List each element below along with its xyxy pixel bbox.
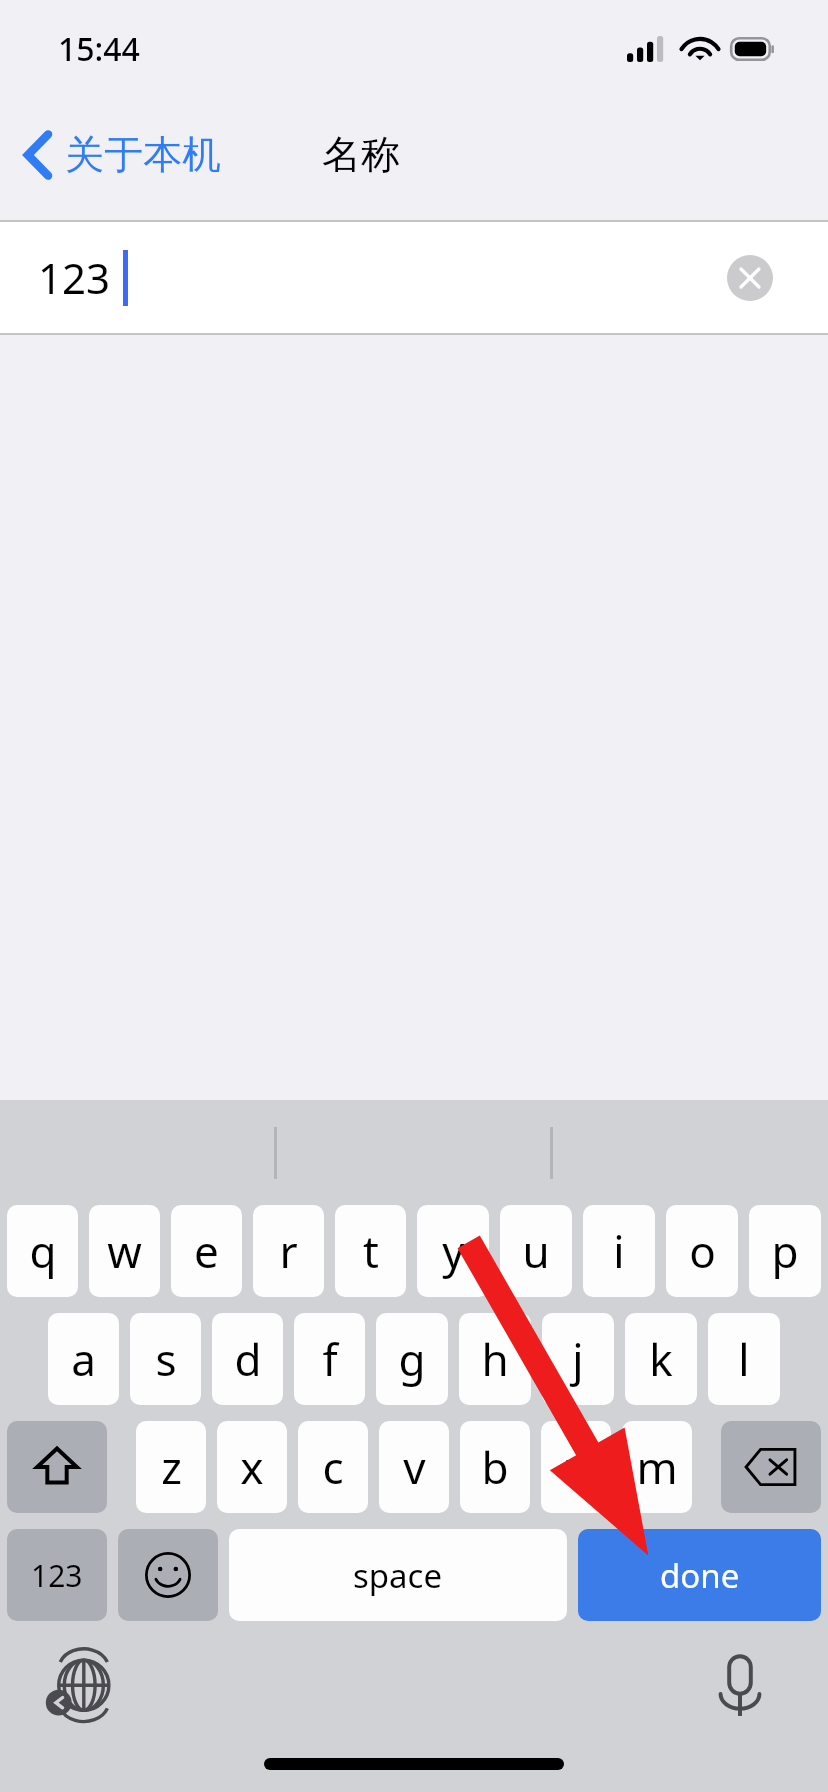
staticText: f	[322, 1329, 338, 1389]
staticText: 123	[31, 1555, 83, 1596]
button[interactable]: b	[460, 1421, 530, 1513]
staticText: q	[29, 1221, 57, 1281]
staticText: b	[481, 1437, 509, 1497]
button[interactable]: Switch language	[42, 1651, 118, 1727]
button[interactable]: Clear text	[727, 255, 773, 301]
staticText: l	[738, 1329, 750, 1389]
staticText: e	[194, 1221, 219, 1281]
staticText: z	[161, 1437, 182, 1497]
staticText: 123	[38, 249, 111, 306]
button[interactable]: f	[294, 1313, 365, 1405]
button[interactable]: r	[253, 1205, 324, 1297]
button[interactable]: g	[376, 1313, 448, 1405]
staticText: 15:44	[58, 27, 140, 71]
button[interactable]: m	[622, 1421, 692, 1513]
button[interactable]: 关于本机	[16, 118, 229, 191]
staticText: done	[660, 1553, 740, 1598]
staticText: s	[155, 1329, 177, 1389]
staticText: r	[279, 1221, 298, 1281]
button[interactable]: z	[136, 1421, 206, 1513]
staticText: n	[562, 1437, 590, 1497]
staticText: a	[71, 1329, 96, 1389]
button[interactable]: a	[48, 1313, 119, 1405]
staticText: o	[689, 1221, 716, 1281]
button[interactable]: c	[298, 1421, 368, 1513]
staticText: p	[771, 1221, 799, 1281]
button[interactable]: e	[171, 1205, 242, 1297]
staticText: 关于本机	[65, 130, 221, 179]
button[interactable]: Dictation	[704, 1649, 776, 1721]
staticText: y	[442, 1221, 465, 1281]
staticText: j	[572, 1329, 584, 1389]
staticText: 名称	[322, 130, 400, 179]
button[interactable]: done	[578, 1529, 821, 1621]
button[interactable]: space	[229, 1529, 567, 1621]
button[interactable]: d	[212, 1313, 283, 1405]
staticText: x	[240, 1437, 264, 1497]
button[interactable]: Backspace	[721, 1421, 821, 1513]
button[interactable]: p	[749, 1205, 821, 1297]
staticText: m	[636, 1437, 678, 1497]
staticText: h	[481, 1329, 509, 1389]
button[interactable]: i	[583, 1205, 655, 1297]
staticText: d	[234, 1329, 262, 1389]
button[interactable]: l	[708, 1313, 780, 1405]
button[interactable]: j	[542, 1313, 614, 1405]
staticText: space	[353, 1553, 443, 1598]
button[interactable]: v	[379, 1421, 449, 1513]
staticText: i	[613, 1221, 625, 1281]
button[interactable]: Emoji	[118, 1529, 218, 1621]
button[interactable]: w	[89, 1205, 160, 1297]
button[interactable]: o	[666, 1205, 738, 1297]
button[interactable]: t	[335, 1205, 406, 1297]
staticText: k	[649, 1329, 673, 1389]
button[interactable]: 123	[7, 1529, 107, 1621]
staticText: w	[107, 1221, 142, 1281]
button[interactable]: u	[500, 1205, 572, 1297]
staticText: g	[398, 1329, 426, 1389]
staticText: v	[403, 1437, 426, 1497]
button[interactable]: h	[459, 1313, 531, 1405]
button[interactable]: q	[7, 1205, 78, 1297]
staticText: c	[322, 1437, 344, 1497]
button[interactable]: y	[417, 1205, 489, 1297]
staticText: u	[522, 1221, 550, 1281]
button[interactable]: s	[130, 1313, 201, 1405]
staticText: t	[363, 1221, 379, 1281]
button[interactable]: n	[541, 1421, 611, 1513]
button[interactable]: x	[217, 1421, 287, 1513]
button[interactable]: Shift	[7, 1421, 107, 1513]
button[interactable]: k	[625, 1313, 697, 1405]
